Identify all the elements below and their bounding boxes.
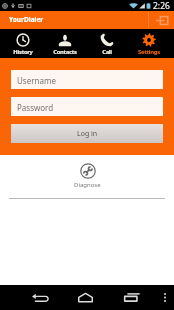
staticText: Password xyxy=(17,102,54,113)
button[interactable]: Username xyxy=(11,70,163,89)
button[interactable]: Recent apps xyxy=(116,285,147,310)
staticText: 2:26 xyxy=(153,0,170,11)
button[interactable]: Settings xyxy=(128,29,170,58)
button[interactable]: Diagnose xyxy=(74,163,101,189)
button[interactable]: Back xyxy=(24,285,56,310)
staticText: Call xyxy=(102,48,112,56)
button[interactable]: Password xyxy=(11,97,163,116)
staticText: Username xyxy=(17,75,56,86)
button[interactable]: Contacts xyxy=(44,29,86,58)
staticText: History xyxy=(13,48,33,56)
staticText: Settings xyxy=(138,48,160,56)
button[interactable]: Log in xyxy=(11,124,163,143)
staticText: YourDialer xyxy=(9,15,44,24)
button[interactable]: History xyxy=(2,29,44,58)
staticText: Contacts xyxy=(53,48,77,56)
staticText: Diagnose xyxy=(74,181,101,189)
staticText: Log in xyxy=(77,129,98,139)
button[interactable]: More options xyxy=(156,285,174,310)
button[interactable]: Home xyxy=(69,285,101,310)
button[interactable]: Log out xyxy=(149,11,174,29)
button[interactable]: Call xyxy=(86,29,128,58)
